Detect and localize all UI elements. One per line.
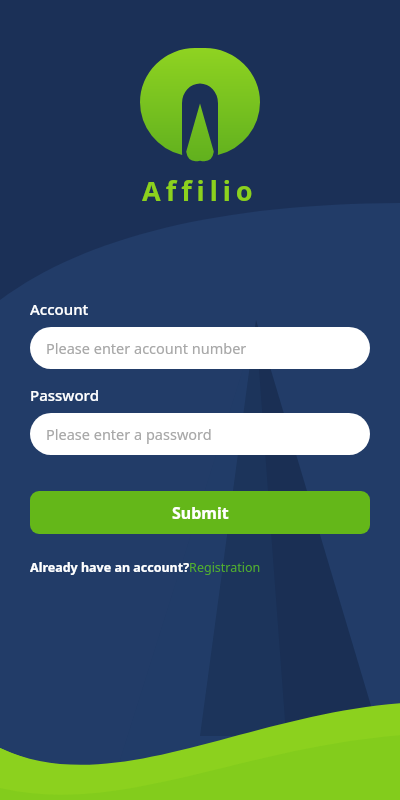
staticText: Please enter account number xyxy=(46,338,247,358)
button[interactable]: Please enter account number xyxy=(30,327,370,369)
staticText: Please enter a password xyxy=(46,424,212,444)
staticText: Affilio xyxy=(142,172,258,209)
staticText: Already have an account?Registration xyxy=(30,559,261,576)
staticText: Account xyxy=(30,299,89,319)
button[interactable]: Submit xyxy=(30,491,370,534)
staticText: Submit xyxy=(172,502,229,524)
button[interactable]: Please enter a password xyxy=(30,413,370,455)
button[interactable]: Already have an account?Registration xyxy=(30,559,261,576)
staticText: Password xyxy=(30,385,99,405)
